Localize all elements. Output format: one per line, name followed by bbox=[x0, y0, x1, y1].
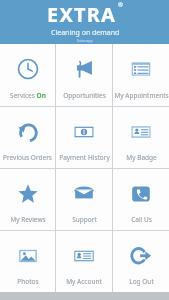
staticText: My Badge bbox=[126, 153, 157, 162]
staticText: Payment History bbox=[59, 153, 110, 162]
button[interactable]: Support bbox=[56, 169, 112, 230]
staticText: EXTRA bbox=[47, 1, 117, 28]
staticText: Cleaning on demand bbox=[51, 28, 120, 38]
button[interactable]: My Reviews bbox=[0, 169, 55, 230]
button[interactable]: ServicesOn bbox=[0, 44, 55, 106]
button[interactable]: Photos bbox=[0, 231, 55, 292]
staticText: Photos bbox=[17, 277, 39, 286]
staticText: Services On bbox=[10, 91, 46, 100]
button[interactable]: Previous Orders bbox=[0, 107, 55, 168]
button[interactable]: Call Us bbox=[113, 169, 169, 230]
staticText: Support bbox=[72, 215, 97, 224]
staticText: Extra app bbox=[77, 38, 93, 43]
staticText: ® bbox=[118, 1, 123, 9]
staticText: My Account bbox=[66, 277, 102, 286]
button[interactable]: Payment History bbox=[56, 107, 112, 168]
button[interactable]: Opportunities bbox=[56, 44, 112, 106]
button[interactable]: My Appointments bbox=[113, 44, 169, 106]
button[interactable]: Log Out bbox=[113, 231, 169, 292]
button[interactable]: My Badge bbox=[113, 107, 169, 168]
staticText: My Appointments bbox=[114, 91, 169, 100]
staticText: Previous Orders bbox=[3, 153, 52, 162]
staticText: Call Us bbox=[131, 215, 152, 224]
button[interactable]: My Account bbox=[56, 231, 112, 292]
staticText: Log Out bbox=[129, 277, 154, 286]
staticText: Opportunities bbox=[63, 91, 106, 100]
staticText: My Reviews bbox=[10, 215, 46, 224]
